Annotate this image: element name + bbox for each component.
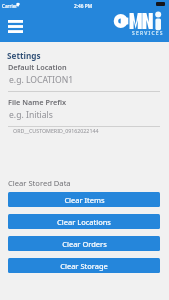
staticText: 2:46 PM [74, 3, 93, 10]
staticText: Settings [7, 50, 41, 61]
staticText: Clear Orders [62, 239, 107, 249]
button[interactable]: Clear Storage [8, 258, 160, 273]
staticText: Carrier [2, 3, 18, 9]
staticText: ORD__CUSTOMERID_09162022144 [13, 127, 99, 134]
staticText: e.g. Initials [9, 109, 53, 121]
staticText: Default Location [8, 62, 67, 72]
button[interactable]: Clear Items [8, 192, 160, 207]
staticText: e.g. LOCATION1 [9, 74, 74, 86]
staticText: SERVICES [132, 30, 164, 37]
staticText: File Name Prefix [8, 97, 67, 107]
button[interactable]: Open navigation menu [4, 15, 27, 38]
staticText: Clear Locations [57, 217, 111, 227]
staticText: Clear Storage [60, 261, 108, 271]
button[interactable]: Clear Locations [8, 214, 160, 229]
button[interactable]: Clear Orders [8, 236, 160, 251]
staticText: Clear Stored Data [8, 178, 71, 188]
staticText: Clear Items [64, 195, 105, 205]
